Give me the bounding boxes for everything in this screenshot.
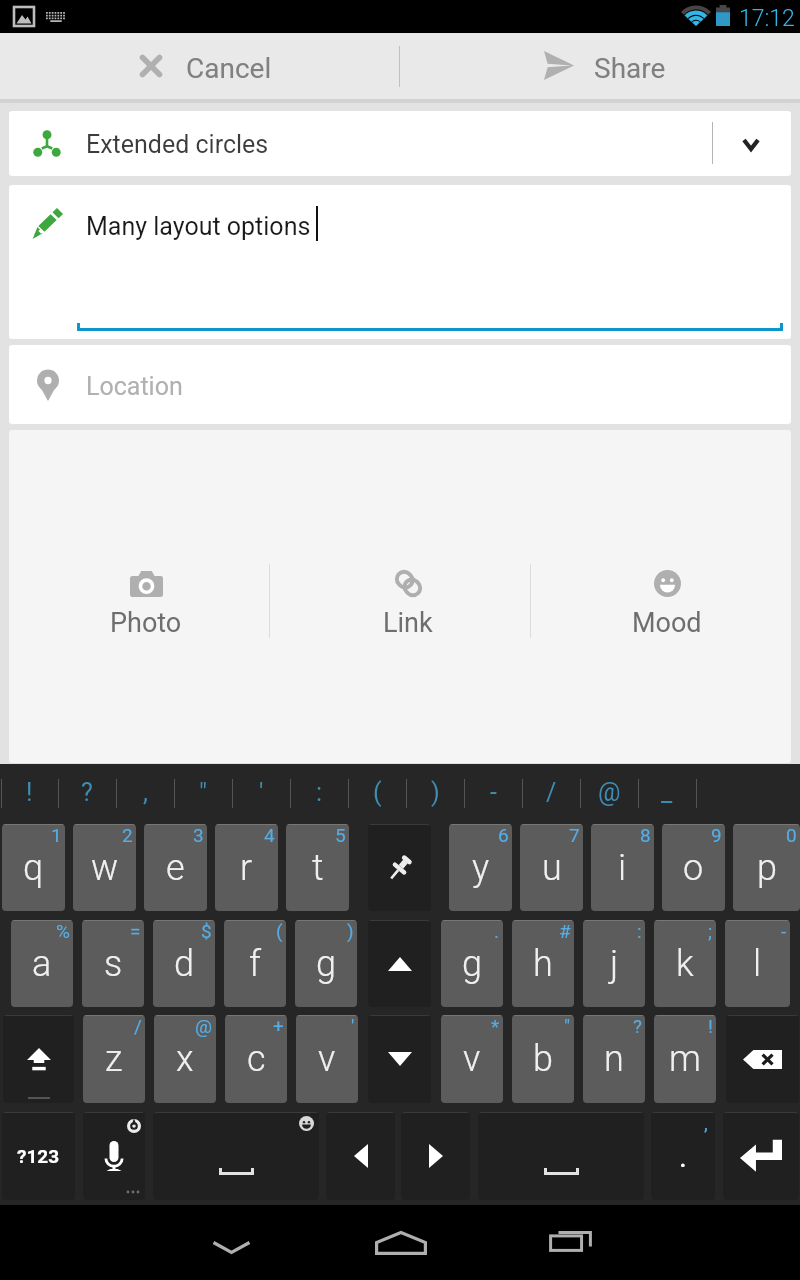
- button[interactable]: Mood: [597, 558, 737, 650]
- button[interactable]: Scroll up: [368, 920, 431, 1007]
- staticText: =: [130, 920, 141, 942]
- button[interactable]: q: [2, 824, 65, 911]
- button[interactable]: Cancel: [0, 33, 400, 99]
- button[interactable]: Move cursor left: [326, 1112, 395, 1200]
- button[interactable]: Space: [478, 1112, 644, 1200]
- staticText: 7: [569, 824, 580, 846]
- button[interactable]: Extended circles: [9, 111, 791, 176]
- button[interactable]: Symbols: [2, 1112, 75, 1200]
- staticText: ': [351, 1015, 355, 1037]
- staticText: %: [56, 920, 70, 942]
- staticText: @: [598, 778, 621, 807]
- button[interactable]: Recent apps: [520, 1205, 620, 1280]
- staticText: f: [249, 943, 261, 985]
- button[interactable]: :: [290, 764, 348, 820]
- staticText: x: [176, 1038, 194, 1080]
- button[interactable]: ): [406, 764, 464, 820]
- button[interactable]: Move cursor right: [401, 1112, 470, 1200]
- staticText: $: [201, 920, 212, 942]
- button[interactable]: Home: [351, 1205, 451, 1280]
- button[interactable]: o: [662, 824, 725, 911]
- button[interactable]: Enter: [723, 1112, 799, 1200]
- staticText: j: [610, 943, 619, 985]
- staticText: v: [318, 1038, 336, 1080]
- button[interactable]: z: [83, 1015, 145, 1103]
- staticText: q: [23, 847, 44, 889]
- staticText: b: [533, 1038, 553, 1080]
- button[interactable]: a: [11, 920, 73, 1007]
- button[interactable]: f: [224, 920, 286, 1007]
- button[interactable]: r: [215, 824, 278, 911]
- staticText: /: [546, 778, 557, 807]
- button[interactable]: _: [638, 764, 696, 820]
- button[interactable]: Pin keyboard: [368, 824, 431, 911]
- button[interactable]: t: [286, 824, 349, 911]
- button[interactable]: Voice input: [83, 1112, 145, 1200]
- button[interactable]: ': [232, 764, 290, 820]
- button[interactable]: l: [725, 920, 790, 1007]
- button[interactable]: ": [174, 764, 232, 820]
- button[interactable]: Scroll down: [368, 1015, 431, 1103]
- button[interactable]: i: [591, 824, 654, 911]
- button[interactable]: d: [153, 920, 215, 1007]
- staticText: p: [757, 847, 777, 889]
- button[interactable]: Period: [651, 1112, 715, 1200]
- button[interactable]: g: [295, 920, 357, 1007]
- button[interactable]: Photo: [76, 558, 216, 650]
- button[interactable]: !: [0, 764, 58, 820]
- button[interactable]: @: [580, 764, 638, 820]
- button[interactable]: Shift: [3, 1015, 74, 1103]
- button[interactable]: j: [583, 920, 645, 1007]
- button[interactable]: e: [144, 824, 207, 911]
- staticText: @: [195, 1015, 213, 1037]
- staticText: Link: [383, 607, 433, 639]
- button[interactable]: Location: [9, 345, 791, 424]
- button[interactable]: Share: [400, 33, 800, 99]
- staticText: 4: [264, 824, 275, 846]
- staticText: ?123: [17, 1145, 60, 1167]
- button[interactable]: g: [441, 920, 503, 1007]
- staticText: n: [604, 1038, 624, 1080]
- button[interactable]: w: [73, 824, 136, 911]
- staticText: 1: [51, 824, 62, 846]
- button[interactable]: p: [733, 824, 800, 911]
- staticText: y: [472, 847, 490, 889]
- staticText: Share: [594, 52, 666, 85]
- staticText: m: [669, 1038, 701, 1080]
- button[interactable]: Space: [153, 1112, 319, 1200]
- button[interactable]: u: [520, 824, 583, 911]
- button[interactable]: b: [512, 1015, 574, 1103]
- staticText: ": [564, 1015, 571, 1037]
- button[interactable]: y: [449, 824, 512, 911]
- staticText: a: [32, 943, 52, 985]
- button[interactable]: /: [522, 764, 580, 820]
- staticText: Many layout options: [86, 212, 311, 241]
- button[interactable]: x: [154, 1015, 216, 1103]
- staticText: :: [637, 920, 642, 942]
- staticText: Mood: [632, 607, 702, 639]
- staticText: ,: [704, 1112, 708, 1134]
- button[interactable]: m: [654, 1015, 716, 1103]
- button[interactable]: Link: [338, 558, 478, 650]
- button[interactable]: (: [348, 764, 406, 820]
- button[interactable]: s: [82, 920, 144, 1007]
- staticText: 2: [122, 824, 133, 846]
- button[interactable]: ,: [116, 764, 174, 820]
- staticText: g: [462, 943, 482, 985]
- button[interactable]: n: [583, 1015, 645, 1103]
- button[interactable]: Many layout options: [9, 185, 791, 339]
- button[interactable]: v: [296, 1015, 358, 1103]
- button[interactable]: k: [654, 920, 716, 1007]
- staticText: i: [618, 847, 627, 889]
- button[interactable]: v: [441, 1015, 503, 1103]
- button[interactable]: ?: [58, 764, 116, 820]
- staticText: (: [373, 778, 382, 807]
- button[interactable]: Hide keyboard: [181, 1205, 281, 1280]
- staticText: -: [781, 920, 787, 942]
- button[interactable]: h: [512, 920, 574, 1007]
- button[interactable]: -: [464, 764, 522, 820]
- button[interactable]: c: [225, 1015, 287, 1103]
- staticText: (: [276, 920, 283, 942]
- staticText: 0: [786, 824, 797, 846]
- button[interactable]: Backspace: [726, 1015, 799, 1103]
